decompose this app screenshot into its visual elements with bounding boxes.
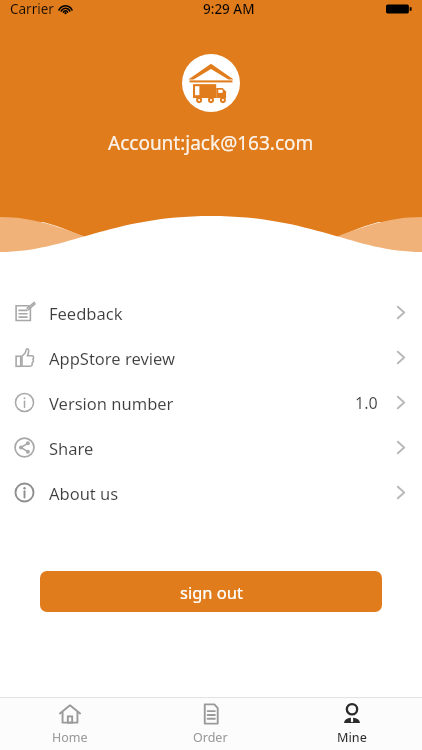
button[interactable]: sign out (40, 571, 382, 612)
staticText: Mine (337, 729, 367, 746)
staticText: Share (49, 437, 94, 459)
staticText: Account:jack@163.com (108, 130, 314, 156)
button[interactable]: About us (0, 470, 422, 515)
staticText: sign out (180, 581, 243, 603)
staticText: Feedback (49, 302, 123, 324)
button[interactable]: Feedback (0, 290, 422, 335)
staticText: AppStore review (49, 347, 175, 369)
button[interactable]: Home (0, 698, 140, 750)
button[interactable]: Version number (0, 380, 422, 425)
staticText: Carrier (10, 0, 54, 18)
staticText: 9:29 AM (203, 0, 255, 18)
button[interactable]: AppStore review (0, 335, 422, 380)
staticText: Version number (49, 392, 174, 414)
staticText: 1.0 (355, 392, 378, 414)
button[interactable]: Share (0, 425, 422, 470)
staticText: Home (52, 729, 88, 746)
button[interactable]: Order (140, 698, 281, 750)
staticText: Order (193, 729, 228, 746)
staticText: About us (49, 482, 119, 504)
button[interactable]: Mine (281, 698, 422, 750)
